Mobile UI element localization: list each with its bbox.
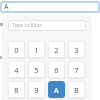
staticText: Type to filter (12, 22, 42, 29)
button[interactable]: 1 (28, 41, 45, 58)
staticText: 2 (54, 45, 59, 55)
button[interactable]: 0 (8, 41, 25, 58)
button[interactable]: 3 (68, 41, 85, 58)
staticText: 5 (34, 65, 39, 75)
staticText: B (74, 85, 79, 95)
button[interactable]: A (0, 1, 100, 13)
button[interactable]: 2 (48, 41, 65, 58)
staticText: 1 (34, 45, 39, 55)
staticText: 7 (74, 65, 79, 75)
button[interactable]: 8 (8, 81, 25, 98)
staticText: 0 (14, 45, 19, 55)
staticText: A (4, 2, 9, 12)
button[interactable]: Type to filter (8, 20, 86, 31)
staticText: 8 (14, 85, 19, 95)
button[interactable]: B (68, 81, 85, 98)
button[interactable]: 6 (48, 61, 65, 78)
button[interactable]: 7 (68, 61, 85, 78)
button[interactable]: 5 (28, 61, 45, 78)
staticText: 9 (34, 85, 39, 95)
button[interactable]: A (48, 81, 65, 98)
button[interactable]: 4 (8, 61, 25, 78)
button[interactable]: 9 (28, 81, 45, 98)
staticText: 3 (74, 45, 79, 55)
staticText: A (54, 85, 59, 95)
staticText: 6 (54, 65, 59, 75)
staticText: 4 (14, 65, 19, 75)
